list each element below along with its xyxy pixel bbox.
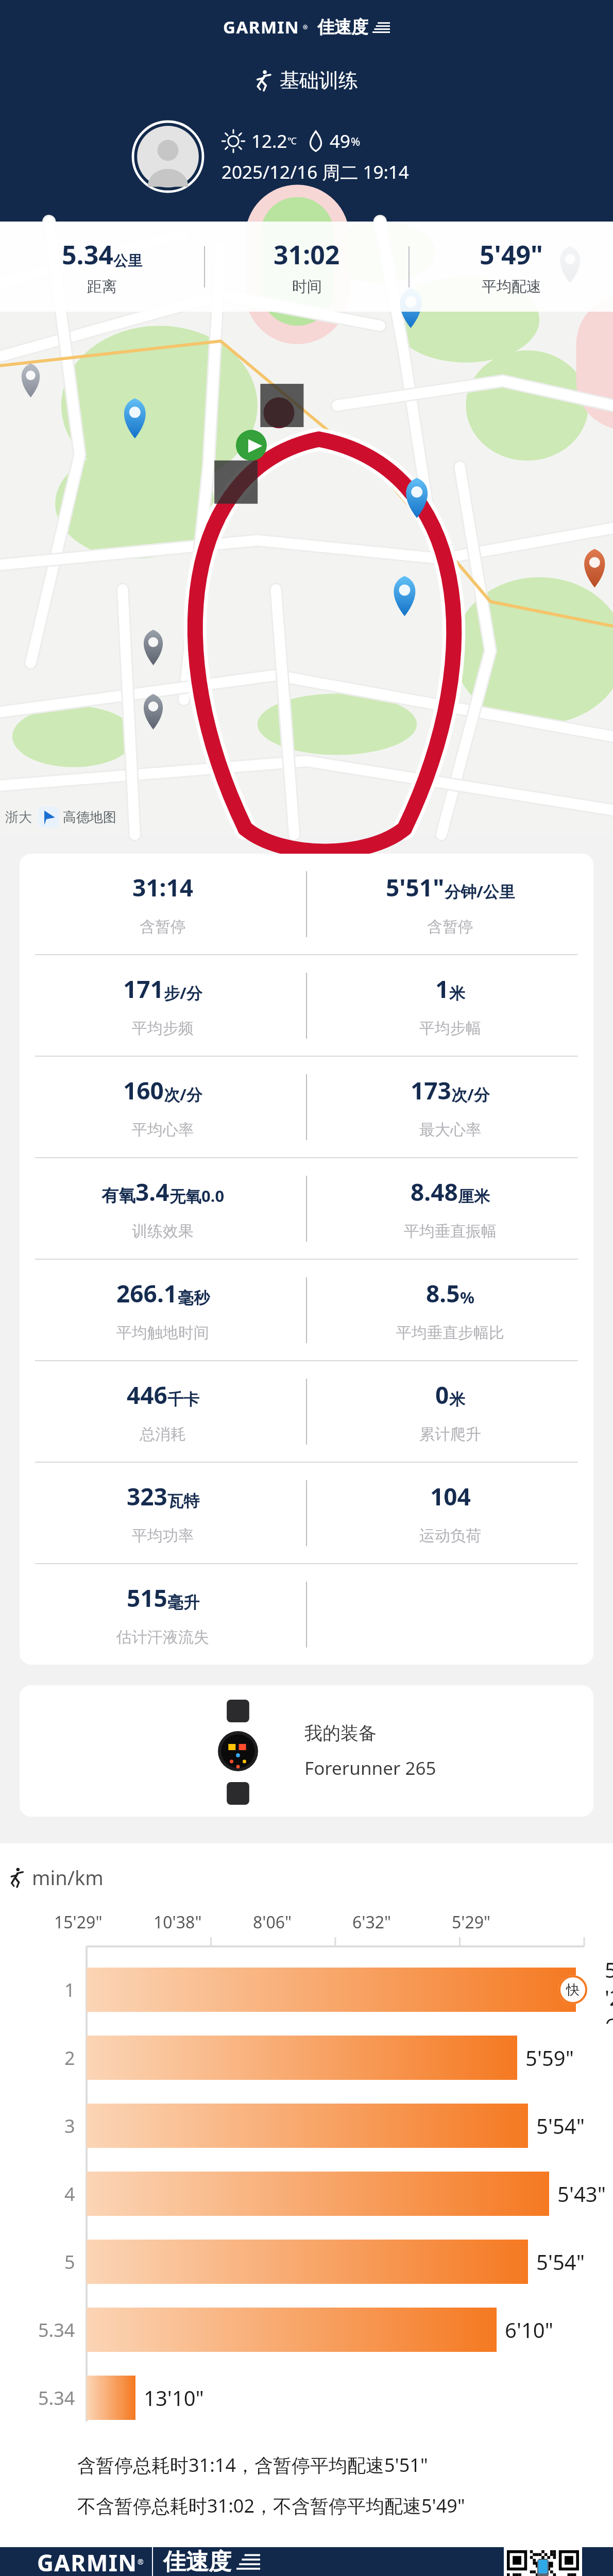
staticText: 佳速度: [163, 2548, 231, 2576]
staticText: 4: [64, 2181, 75, 2207]
staticText: 训练效果: [132, 1222, 194, 1241]
staticText: 我的装备: [304, 1722, 377, 1744]
staticText: ℃: [287, 134, 297, 147]
staticText: 8'06": [253, 1911, 292, 1934]
staticText: 8.48: [411, 1176, 458, 1208]
staticText: 时间: [292, 277, 322, 296]
button[interactable]: 基础训练: [255, 68, 358, 93]
staticText: 13'10": [144, 2384, 204, 2412]
staticText: 次/分: [164, 1083, 202, 1105]
staticText: %: [351, 133, 361, 149]
staticText: 104: [430, 1480, 471, 1513]
staticText: 12.2: [251, 129, 287, 154]
staticText: 8.5: [426, 1277, 460, 1310]
button[interactable]: 5'51": [307, 871, 593, 937]
button[interactable]: 323: [20, 1480, 306, 1546]
staticText: 累计爬升: [419, 1425, 481, 1444]
staticText: GARMIN: [223, 15, 300, 39]
staticText: 5.34: [38, 2317, 75, 2343]
staticText: 平均心率: [132, 1120, 194, 1140]
staticText: 含暂停总耗时31:14，含暂停平均配速5'51": [77, 2452, 428, 2478]
staticText: 173: [411, 1074, 451, 1107]
staticText: 毫秒: [178, 1288, 210, 1308]
staticText: 估计汗液流失: [116, 1628, 209, 1647]
staticText: 171: [123, 973, 164, 1005]
button[interactable]: 有氧: [20, 1176, 306, 1241]
button[interactable]: 31:14: [20, 871, 306, 937]
staticText: 5'54": [536, 2248, 585, 2276]
button[interactable]: [87, 2240, 528, 2284]
staticText: %: [460, 1286, 474, 1308]
staticText: 平均步幅: [419, 1019, 481, 1038]
staticText: 2025/12/16 周二 19:14: [222, 160, 409, 184]
staticText: 5'59": [525, 2044, 574, 2072]
button[interactable]: [87, 2376, 135, 2420]
button[interactable]: [87, 1968, 576, 2012]
button[interactable]: [87, 2036, 517, 2080]
staticText: 5: [64, 2249, 75, 2275]
staticText: 含暂停: [140, 917, 186, 937]
staticText: 千卡: [167, 1389, 199, 1410]
button[interactable]: 8.5: [307, 1277, 593, 1343]
staticText: 0: [435, 1379, 449, 1411]
staticText: 含暂停: [427, 917, 473, 937]
staticText: 瓦特: [167, 1491, 199, 1511]
staticText: 平均触地时间: [116, 1323, 209, 1343]
staticText: 公里: [113, 252, 142, 270]
staticText: 160: [123, 1074, 164, 1107]
button[interactable]: 515: [20, 1582, 306, 1647]
staticText: 运动负荷: [419, 1526, 481, 1546]
staticText: 平均配速: [482, 277, 541, 296]
button[interactable]: QR code: [504, 2547, 582, 2576]
button[interactable]: 266.1: [20, 1277, 306, 1343]
staticText: 平均垂直振幅: [404, 1222, 497, 1241]
staticText: 基础训练: [280, 68, 358, 93]
staticText: 5.34: [38, 2385, 75, 2411]
button[interactable]: 1: [307, 973, 593, 1038]
button[interactable]: Activity route map: [0, 222, 613, 835]
button[interactable]: [87, 2172, 549, 2216]
staticText: 446: [127, 1379, 167, 1411]
staticText: 1: [435, 973, 449, 1005]
button[interactable]: 31:02: [205, 237, 408, 296]
button[interactable]: 160: [20, 1074, 306, 1140]
staticText: 5'26": [605, 1956, 613, 2024]
staticText: 无氧0.0: [169, 1185, 225, 1207]
staticText: 15'29": [54, 1911, 103, 1934]
staticText: min/km: [32, 1864, 104, 1891]
staticText: 6'10": [505, 2316, 553, 2344]
staticText: 平均步频: [132, 1019, 194, 1038]
staticText: 佳速度: [317, 16, 368, 38]
staticText: 平均功率: [132, 1526, 194, 1546]
staticText: 分钟/公里: [445, 880, 515, 902]
staticText: 步/分: [164, 982, 202, 1004]
staticText: 毫升: [167, 1592, 199, 1613]
button[interactable]: 446: [20, 1379, 306, 1444]
staticText: 1: [64, 1977, 75, 2003]
staticText: 5'51": [386, 871, 445, 904]
button[interactable]: 8.48: [307, 1176, 593, 1241]
button[interactable]: 我的装备: [20, 1685, 593, 1817]
button[interactable]: 5'49": [410, 237, 613, 296]
staticText: 次/分: [451, 1083, 490, 1105]
button[interactable]: 104: [307, 1480, 593, 1546]
staticText: 266.1: [116, 1277, 178, 1310]
button[interactable]: 173: [307, 1074, 593, 1140]
staticText: 最大心率: [419, 1120, 481, 1140]
staticText: GARMIN: [37, 2547, 138, 2576]
button[interactable]: 5.34: [0, 237, 204, 296]
staticText: 平均垂直步幅比: [396, 1323, 504, 1343]
staticText: 3: [64, 2113, 75, 2139]
staticText: 5'54": [536, 2112, 585, 2140]
staticText: 10'38": [154, 1911, 202, 1934]
button[interactable]: [87, 2308, 497, 2352]
staticText: 5.34: [62, 237, 113, 272]
staticText: 高德地图: [63, 809, 116, 826]
button[interactable]: [87, 2104, 528, 2148]
staticText: 距离: [87, 277, 117, 296]
button[interactable]: 171: [20, 973, 306, 1038]
staticText: Forerunner 265: [304, 1756, 436, 1781]
button[interactable]: 0: [307, 1379, 593, 1444]
staticText: 浙大: [5, 809, 32, 826]
staticText: 2: [64, 2045, 75, 2071]
